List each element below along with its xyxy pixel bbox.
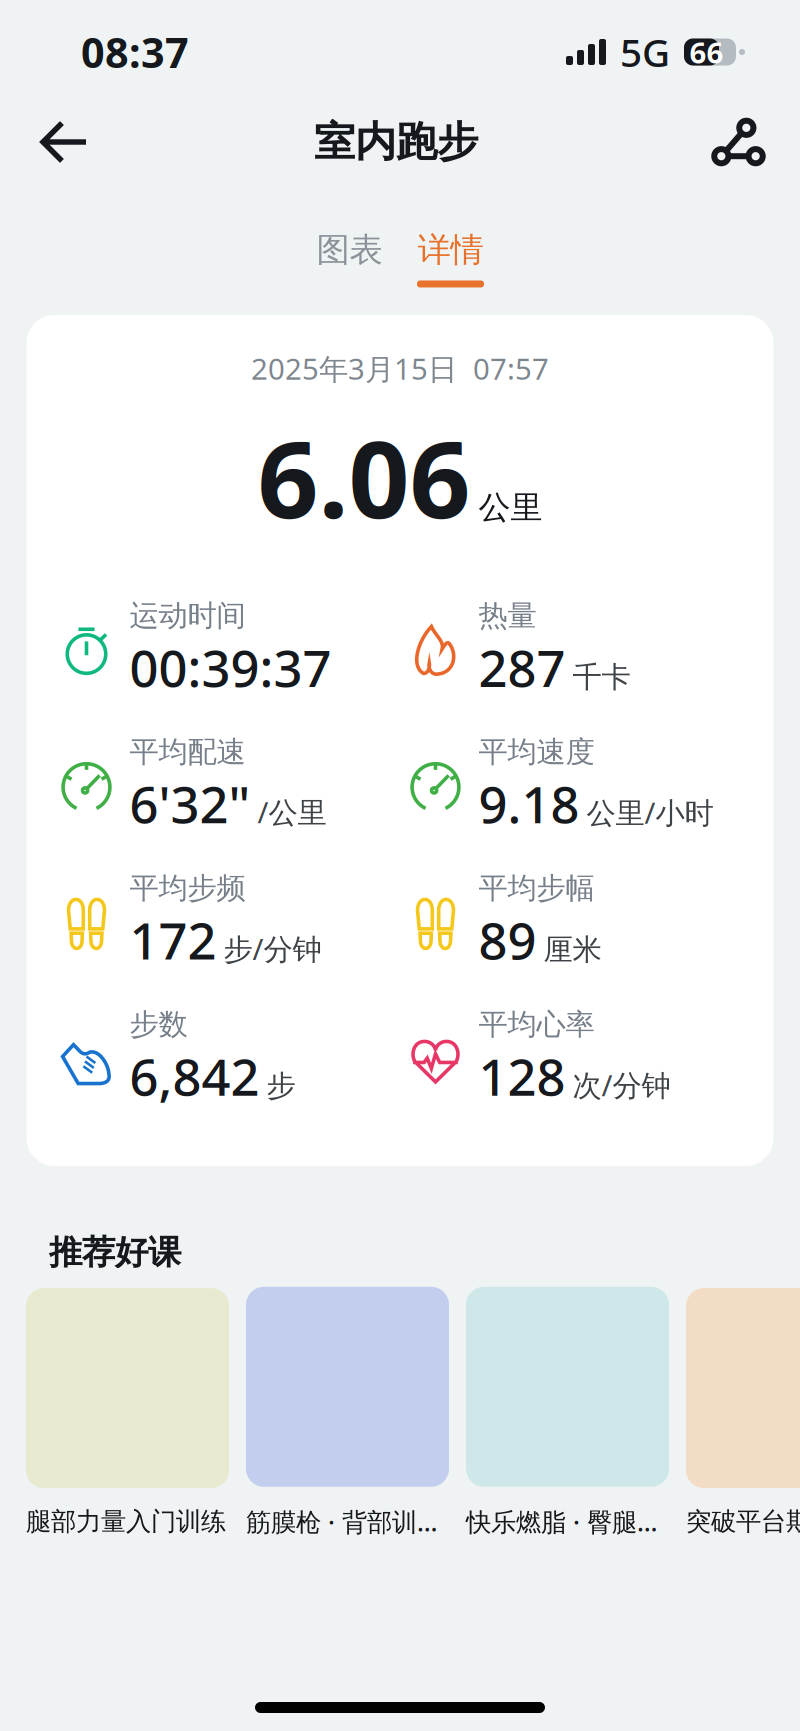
staticText: 次/分钟 <box>572 1065 670 1104</box>
staticText: 00:39:37 <box>129 634 331 701</box>
staticText: 热量 <box>478 598 536 634</box>
staticText: 128 <box>478 1043 565 1110</box>
staticText: 平均步幅 <box>478 870 594 906</box>
button[interactable]: 快乐燃脂 · 臀腿… <box>466 1287 669 1538</box>
staticText: 千卡 <box>572 659 630 695</box>
staticText: 步 <box>266 1068 295 1104</box>
staticText: 平均配速 <box>129 734 245 770</box>
staticText: 2025年3月15日 07:57 <box>251 349 549 388</box>
button[interactable]: 筋膜枪 · 背部训… <box>246 1287 449 1538</box>
staticText: 平均速度 <box>478 734 594 770</box>
staticText: 图表 <box>316 229 382 270</box>
staticText: 89 <box>478 906 536 974</box>
staticText: 厘米 <box>543 932 601 968</box>
staticText: 08:37 <box>81 25 189 79</box>
staticText: 筋膜枪 · 背部训… <box>246 1505 438 1538</box>
staticText: 66 <box>689 32 723 71</box>
staticText: 快乐燃脂 · 臀腿… <box>466 1505 658 1538</box>
staticText: 运动时间 <box>129 598 245 634</box>
staticText: 步/分钟 <box>223 929 321 968</box>
staticText: 公里/小时 <box>586 793 713 832</box>
staticText: /公里 <box>257 792 326 831</box>
staticText: 5G <box>620 26 670 78</box>
button[interactable]: 图表 <box>316 229 383 287</box>
staticText: 公里 <box>478 488 542 527</box>
staticText: 172 <box>129 906 216 974</box>
button[interactable]: 突破平台期 <box>686 1288 800 1537</box>
staticText: 平均心率 <box>478 1006 594 1042</box>
staticText: 6,842 <box>129 1043 259 1110</box>
button[interactable]: Share <box>667 112 772 193</box>
staticText: 6.06 <box>257 406 470 548</box>
staticText: 步数 <box>129 1006 187 1042</box>
staticText: 突破平台期 <box>686 1506 800 1537</box>
staticText: 腿部力量入门训练 <box>26 1506 226 1537</box>
staticText: 推荐好课 <box>49 1232 181 1273</box>
button[interactable]: 详情 <box>417 229 484 287</box>
staticText: 9.18 <box>478 770 579 837</box>
button[interactable]: 腿部力量入门训练 <box>26 1288 229 1537</box>
staticText: 详情 <box>417 229 483 270</box>
staticText: 287 <box>478 634 565 701</box>
button[interactable]: Back <box>26 112 125 193</box>
staticText: 平均步频 <box>129 870 245 906</box>
staticText: 室内跑步 <box>314 117 478 167</box>
staticText: 6'32" <box>129 770 250 837</box>
